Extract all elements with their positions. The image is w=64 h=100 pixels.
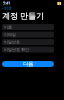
staticText: 이름 [4, 25, 12, 30]
staticText: ▮▮ [57, 1, 61, 5]
staticText: ‹ 뒤로 [2, 5, 12, 11]
staticText: 비밀번호 [4, 40, 20, 45]
staticText: 계정 만들기 [2, 11, 44, 21]
staticText: 9:41 [3, 0, 10, 6]
staticText: 비밀번호 확인 [4, 47, 29, 52]
button[interactable]: 다음 [2, 61, 54, 67]
staticText: 이메일 [4, 32, 16, 37]
button[interactable]: ‹ 뒤로 [0, 5, 12, 11]
staticText: 다음 [23, 61, 33, 67]
